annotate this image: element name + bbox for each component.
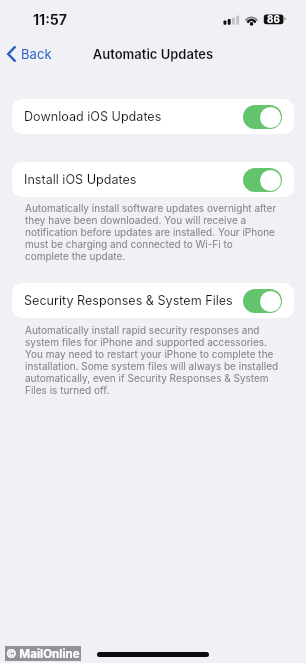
button[interactable]: Toggle switch, on: [243, 105, 282, 129]
staticText: Download iOS Updates: [24, 109, 162, 124]
staticText: Automatically install rapid security res…: [25, 324, 279, 396]
staticText: Back: [21, 46, 52, 62]
staticText: 11:57: [33, 11, 68, 28]
staticText: 86: [267, 14, 280, 26]
button[interactable]: Toggle switch, on: [243, 168, 282, 192]
staticText: Security Responses & System Files: [24, 293, 233, 308]
staticText: Automatic Updates: [0, 46, 306, 62]
button[interactable]: Install iOS Updates: [12, 162, 294, 197]
button[interactable]: Security Responses & System Files: [12, 283, 294, 318]
button[interactable]: Toggle switch, on: [243, 289, 282, 313]
other: Back chevron: [7, 46, 16, 62]
staticText: Install iOS Updates: [24, 172, 137, 187]
button[interactable]: Back: [3, 43, 56, 65]
staticText: Automatically install software updates o…: [25, 202, 279, 262]
button[interactable]: Download iOS Updates: [12, 99, 294, 134]
staticText: © MailOnline: [6, 647, 80, 661]
